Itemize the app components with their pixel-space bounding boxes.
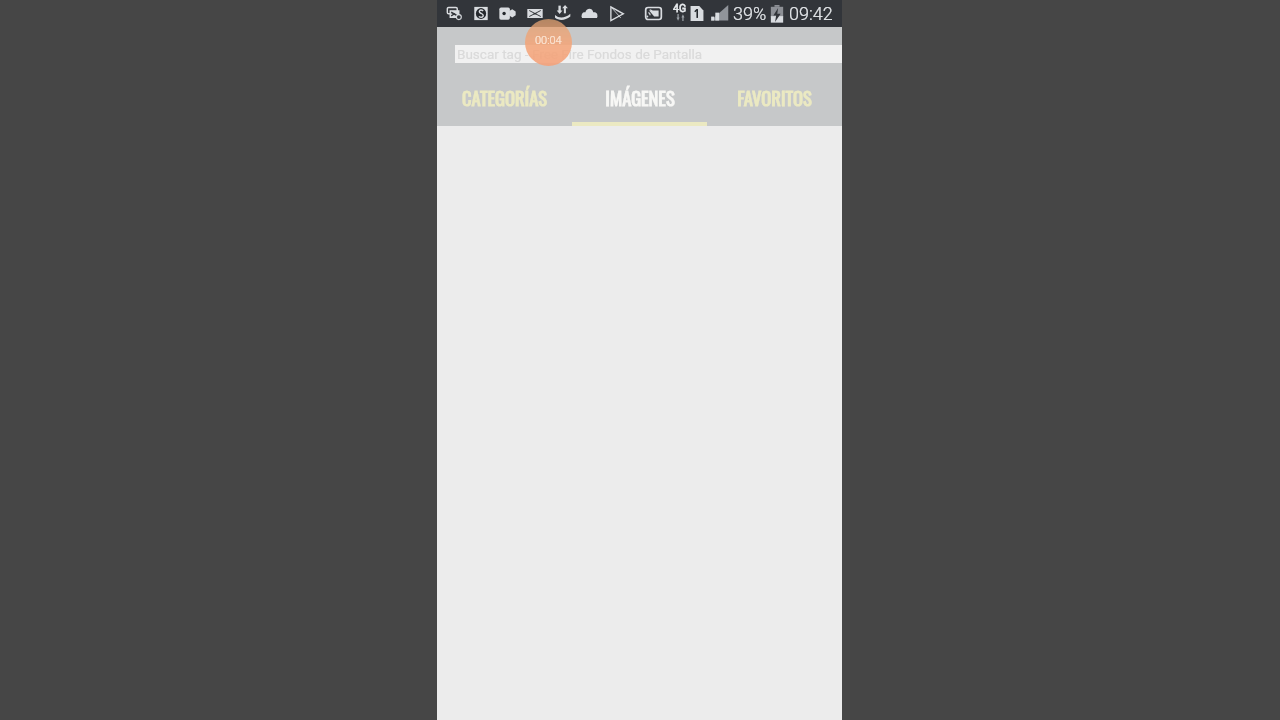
button[interactable]: FAVORITOS xyxy=(707,27,842,126)
button[interactable]: Detener grabación de pantalla xyxy=(525,19,572,66)
staticText: FAVORITOS xyxy=(737,84,812,111)
staticText: Buscar tag - Free Fire Fondos de Pantall… xyxy=(457,46,703,62)
staticText: CATEGORÍAS xyxy=(462,84,547,111)
staticText: 00:04 xyxy=(535,34,562,47)
staticText: 09:42 xyxy=(789,3,833,24)
staticText: 4G xyxy=(673,2,687,14)
button[interactable]: IMÁGENES xyxy=(572,27,707,126)
button[interactable]: Buscar xyxy=(455,45,842,63)
button[interactable]: CATEGORÍAS xyxy=(437,27,572,126)
staticText: 39% xyxy=(733,3,767,24)
staticText: IMÁGENES xyxy=(605,84,675,111)
